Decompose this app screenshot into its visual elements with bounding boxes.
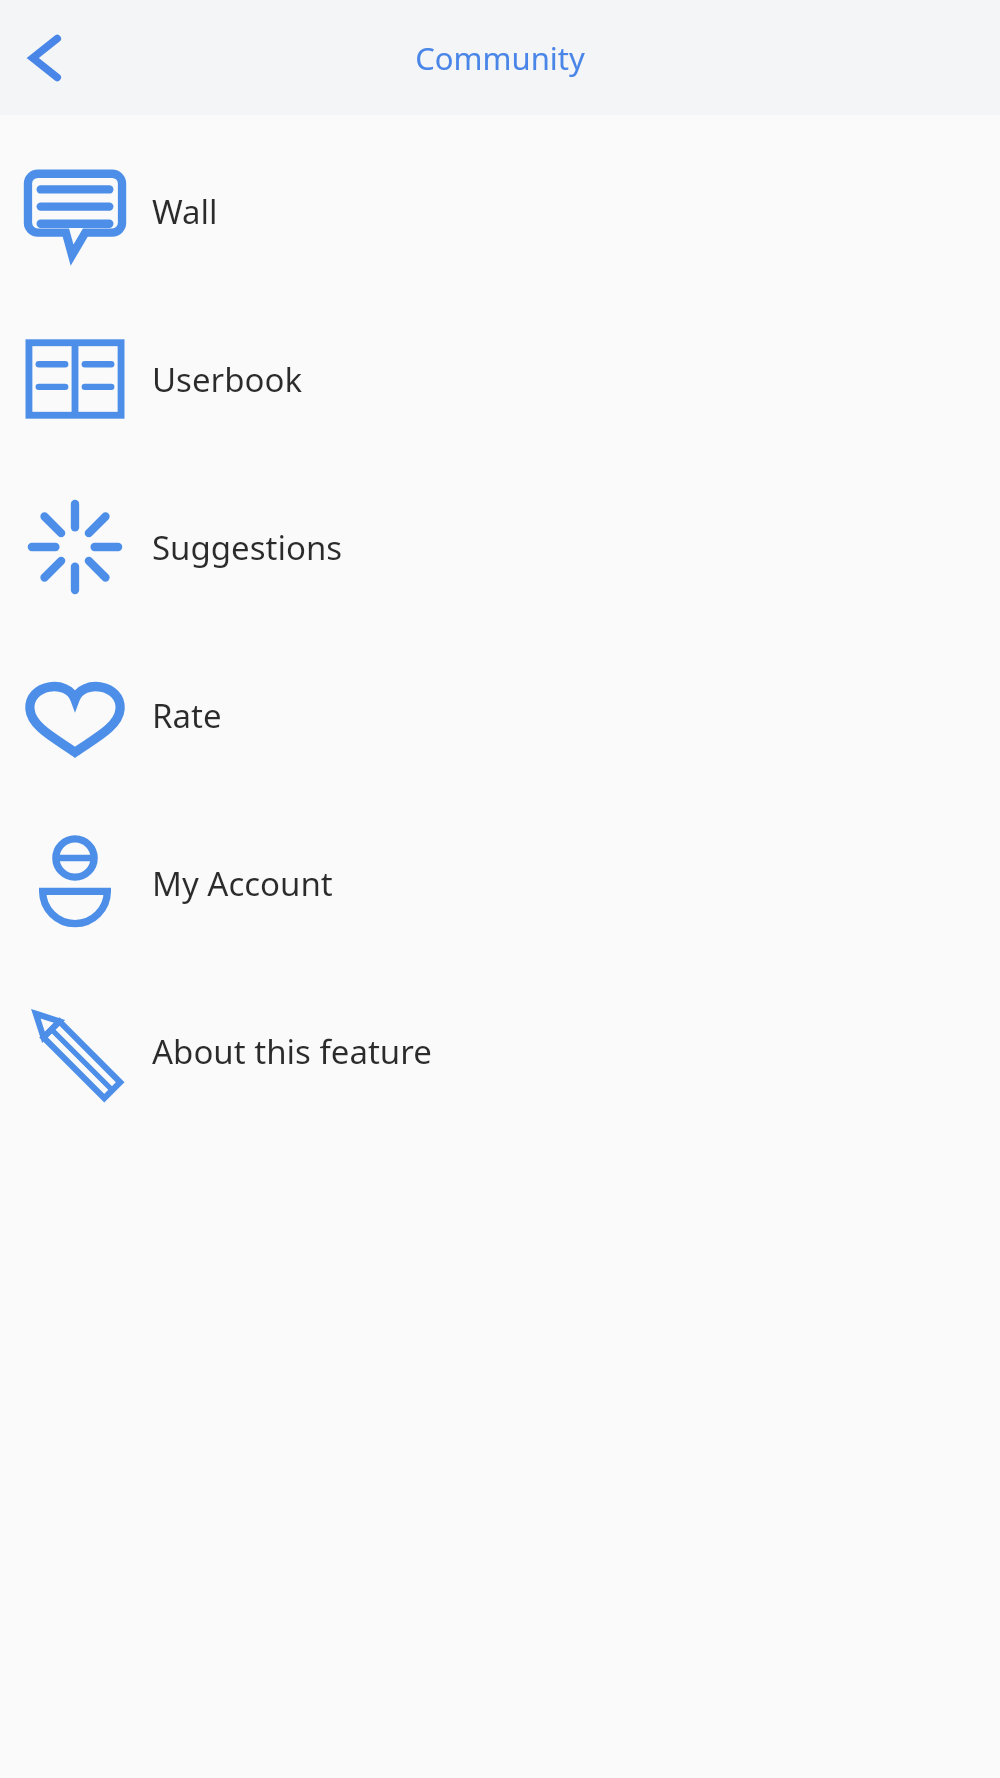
- staticText: About this feature: [152, 1029, 432, 1074]
- button[interactable]: My Account: [0, 799, 1000, 967]
- staticText: Community: [415, 37, 585, 79]
- button[interactable]: About this feature: [0, 967, 1000, 1135]
- button[interactable]: Rate: [0, 631, 1000, 799]
- staticText: Suggestions: [152, 525, 343, 570]
- staticText: Wall: [152, 189, 218, 234]
- staticText: My Account: [152, 861, 333, 906]
- button[interactable]: Wall: [0, 127, 1000, 295]
- staticText: Userbook: [152, 357, 303, 402]
- button[interactable]: Suggestions: [0, 463, 1000, 631]
- button[interactable]: Back: [4, 22, 76, 94]
- button[interactable]: Userbook: [0, 295, 1000, 463]
- staticText: Rate: [152, 693, 222, 738]
